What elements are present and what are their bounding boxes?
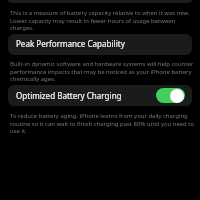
- staticText: To reduce battery aging, iPhone learns f…: [10, 112, 196, 134]
- staticText: Optimized Battery Charging: [16, 90, 122, 101]
- button[interactable]: Optimized Battery Charging toggle: [156, 88, 185, 103]
- staticText: Built-in dynamic software and hardware s…: [10, 60, 196, 82]
- button[interactable]: Peak Performance Capability: [8, 34, 192, 55]
- staticText: Peak Performance Capability: [16, 38, 125, 49]
- staticText: This is a measure of battery capacity re…: [10, 9, 196, 31]
- button[interactable]: Optimized Battery Charging: [8, 85, 192, 106]
